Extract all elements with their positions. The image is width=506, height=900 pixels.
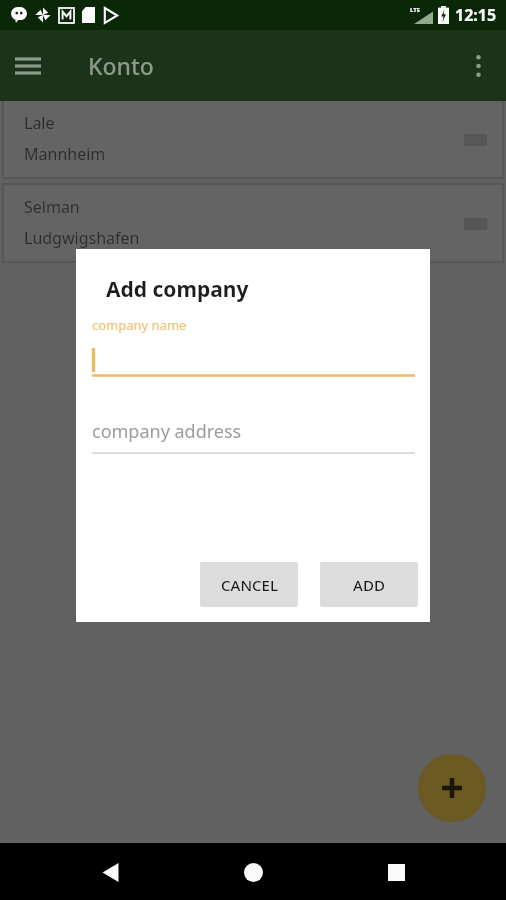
button[interactable]: CANCEL: [200, 562, 298, 607]
staticText: CANCEL: [221, 575, 278, 595]
button[interactable]: Home: [228, 847, 278, 897]
button[interactable]: ADD: [320, 562, 418, 607]
staticText: company name: [92, 316, 187, 334]
staticText: LTE: [410, 6, 421, 14]
button[interactable]: Lale: [3, 100, 503, 178]
staticText: Ludgwigshafen: [24, 227, 140, 249]
button[interactable]: Recent apps: [371, 847, 421, 897]
button[interactable]: More options: [450, 38, 506, 94]
button[interactable]: Back: [85, 847, 135, 897]
button[interactable]: company name: [92, 316, 415, 377]
staticText: Mannheim: [24, 143, 106, 165]
staticText: Lale: [24, 112, 55, 134]
staticText: Selman: [24, 196, 80, 218]
staticText: ADD: [353, 575, 385, 595]
staticText: Add company: [106, 275, 249, 304]
button[interactable]: Add: [418, 754, 486, 822]
button[interactable]: Open navigation drawer: [0, 38, 56, 94]
staticText: 12:15: [455, 4, 497, 26]
staticText: company address: [92, 419, 242, 444]
button[interactable]: company address: [92, 419, 415, 454]
button[interactable]: Selman: [3, 184, 503, 262]
staticText: Konto: [88, 50, 154, 81]
